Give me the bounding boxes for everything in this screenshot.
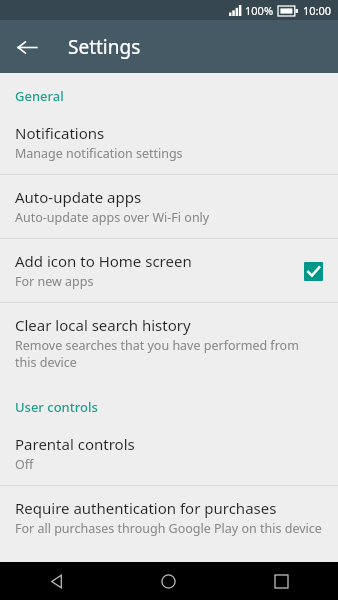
- staticText: For new apps: [15, 273, 94, 290]
- staticText: Auto-update apps over Wi-Fi only: [15, 209, 210, 226]
- button[interactable]: Back: [0, 562, 112, 600]
- staticText: Notifications: [15, 123, 105, 143]
- staticText: General: [15, 87, 64, 105]
- staticText: Auto-update apps: [15, 187, 142, 207]
- staticText: Clear local search history: [15, 315, 191, 335]
- staticText: Off: [15, 456, 34, 473]
- staticText: Add icon to Home screen: [15, 251, 192, 271]
- staticText: Settings: [68, 34, 141, 60]
- button[interactable]: Home: [112, 562, 225, 600]
- button[interactable]: Parental controls: [0, 422, 338, 485]
- button[interactable]: Require authentication for purchases: [0, 486, 338, 549]
- button[interactable]: Add icon to Home screen checkbox: [300, 258, 326, 284]
- staticText: Manage notification settings: [15, 145, 183, 162]
- button[interactable]: Recent apps: [225, 562, 338, 600]
- button[interactable]: Back: [7, 27, 47, 67]
- button[interactable]: Notifications: [0, 111, 338, 174]
- staticText: 10:00: [303, 3, 332, 18]
- staticText: Remove searches that you have performed …: [15, 337, 322, 370]
- button[interactable]: Clear local search history: [0, 303, 338, 382]
- staticText: Parental controls: [15, 434, 135, 454]
- button[interactable]: Auto-update apps: [0, 175, 338, 238]
- staticText: For all purchases through Google Play on…: [15, 520, 322, 537]
- staticText: 100%: [245, 3, 274, 18]
- staticText: Require authentication for purchases: [15, 498, 277, 518]
- staticText: User controls: [15, 398, 98, 416]
- button[interactable]: Add icon to Home screen: [0, 239, 338, 302]
